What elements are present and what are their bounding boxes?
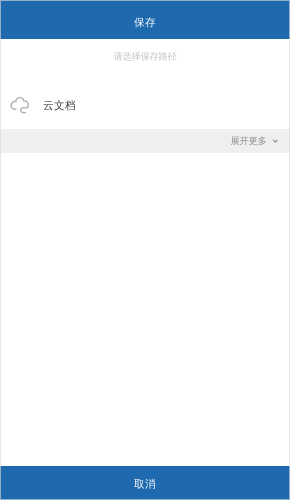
button[interactable]: 云文档: [0, 74, 290, 129]
staticText: 取消: [134, 477, 156, 490]
staticText: 展开更多: [231, 135, 267, 147]
staticText: 云文档: [43, 99, 76, 112]
button[interactable]: 取消: [0, 466, 290, 500]
staticText: 请选择保存路径: [113, 51, 176, 62]
staticText: 保存: [134, 16, 156, 29]
button[interactable]: 展开更多: [0, 129, 290, 153]
